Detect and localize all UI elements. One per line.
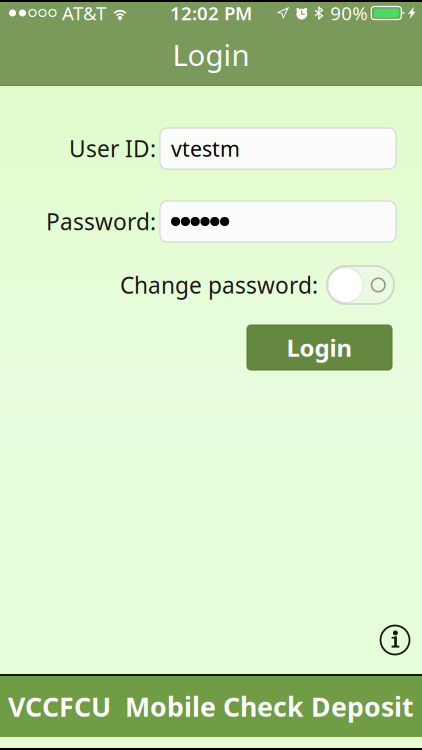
staticText: vtestm [171,134,240,163]
staticText: VCCFCU Mobile Check Deposit [8,689,414,724]
staticText: User ID: [69,133,156,163]
staticText: AT&T [62,1,106,25]
staticText: 12:02 PM [170,1,252,25]
button[interactable]: Login [247,325,392,370]
button[interactable]: Info [378,623,412,657]
button[interactable]: Change password [327,266,394,304]
staticText: Login [286,332,352,363]
staticText: Change password: [120,270,318,300]
staticText: Password: [46,206,156,236]
staticText: Login [172,35,249,74]
staticText: 90% [330,1,368,25]
